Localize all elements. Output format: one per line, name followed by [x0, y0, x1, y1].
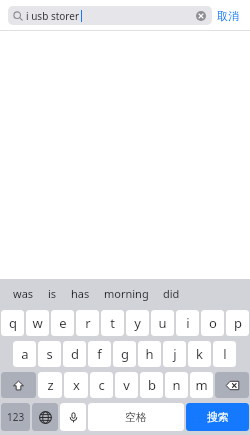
staticText: z — [47, 376, 54, 394]
staticText: m — [195, 376, 208, 394]
button[interactable]: Backspace — [215, 372, 249, 398]
staticText: q — [9, 314, 17, 332]
button[interactable]: d — [63, 341, 86, 367]
button[interactable]: c — [90, 372, 113, 398]
button[interactable]: p — [226, 310, 249, 336]
staticText: 123 — [7, 410, 25, 424]
button[interactable]: e — [51, 310, 74, 336]
button[interactable]: Switch keyboard language — [32, 403, 58, 431]
button[interactable]: f — [88, 341, 111, 367]
staticText: did — [163, 286, 180, 301]
staticText: h — [145, 345, 154, 363]
button[interactable]: Voice input — [60, 403, 86, 431]
button[interactable]: a — [13, 341, 36, 367]
button[interactable]: was — [6, 282, 41, 305]
button[interactable]: u — [151, 310, 174, 336]
staticText: n — [172, 376, 181, 394]
staticText: j — [173, 345, 177, 363]
button[interactable]: x — [64, 372, 88, 398]
button[interactable]: m — [190, 372, 213, 398]
button[interactable]: Shift — [1, 372, 36, 398]
staticText: v — [123, 376, 130, 394]
staticText: f — [97, 345, 102, 363]
button[interactable]: s — [38, 341, 61, 367]
staticText: c — [98, 376, 105, 394]
staticText: p — [234, 314, 242, 332]
button[interactable]: b — [140, 372, 163, 398]
staticText: t — [110, 314, 115, 332]
button[interactable]: v — [115, 372, 138, 398]
staticText: is — [48, 286, 57, 301]
staticText: i usb storer — [26, 9, 80, 23]
button[interactable]: 搜索 — [186, 403, 249, 431]
button[interactable]: h — [138, 341, 161, 367]
staticText: a — [21, 345, 29, 363]
button[interactable]: g — [113, 341, 136, 367]
staticText: l — [223, 345, 227, 363]
staticText: d — [71, 345, 79, 363]
button[interactable]: k — [188, 341, 211, 367]
staticText: r — [85, 314, 91, 332]
button[interactable]: n — [165, 372, 188, 398]
button[interactable]: is — [41, 282, 64, 305]
button[interactable]: Clear text — [194, 9, 207, 22]
staticText: 搜索 — [207, 410, 229, 424]
button[interactable]: did — [156, 282, 187, 305]
button[interactable]: l — [213, 341, 236, 367]
button[interactable]: has — [64, 282, 97, 305]
button[interactable]: z — [38, 372, 62, 398]
staticText: b — [148, 376, 156, 394]
staticText: y — [134, 314, 141, 332]
staticText: morning — [104, 286, 149, 301]
staticText: w — [32, 314, 43, 332]
staticText: s — [46, 345, 53, 363]
staticText: e — [59, 314, 67, 332]
button[interactable]: i usb storer — [8, 6, 212, 25]
button[interactable]: morning — [97, 282, 156, 305]
staticText: g — [121, 345, 129, 363]
button[interactable]: w — [26, 310, 49, 336]
staticText: x — [73, 376, 80, 394]
button[interactable]: 空格 — [88, 403, 184, 431]
button[interactable]: o — [201, 310, 224, 336]
button[interactable]: i — [176, 310, 199, 336]
button[interactable]: j — [163, 341, 186, 367]
staticText: has — [71, 286, 90, 301]
button[interactable]: r — [76, 310, 99, 336]
staticText: u — [158, 314, 167, 332]
button[interactable]: y — [126, 310, 149, 336]
button[interactable]: t — [101, 310, 124, 336]
staticText: k — [196, 345, 203, 363]
staticText: 空格 — [125, 410, 147, 424]
staticText: was — [13, 286, 34, 301]
staticText: 取消 — [217, 9, 239, 23]
button[interactable]: q — [1, 310, 24, 336]
button[interactable]: 取消 — [212, 7, 244, 25]
staticText: i — [186, 314, 190, 332]
staticText: o — [209, 314, 217, 332]
button[interactable]: 123 — [1, 403, 30, 431]
